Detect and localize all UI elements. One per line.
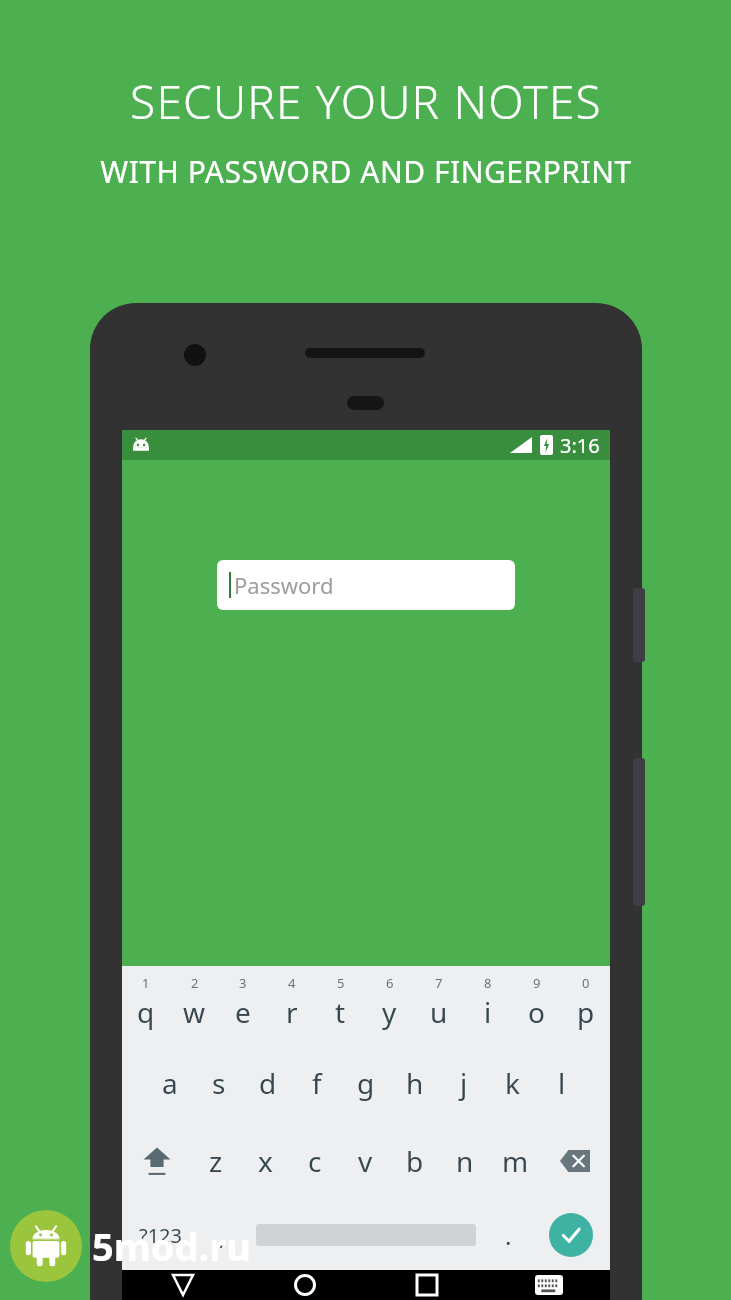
- staticText: s: [212, 1064, 226, 1102]
- staticText: c: [308, 1142, 322, 1180]
- button[interactable]: 6: [365, 966, 414, 1044]
- staticText: j: [460, 1064, 468, 1102]
- button[interactable]: Shift: [122, 1122, 191, 1200]
- staticText: a: [162, 1064, 178, 1102]
- staticText: 9: [533, 974, 541, 992]
- button[interactable]: a: [146, 1044, 194, 1122]
- button[interactable]: k: [488, 1044, 537, 1122]
- staticText: q: [137, 993, 155, 1031]
- button[interactable]: g: [341, 1044, 390, 1122]
- button[interactable]: Password: [217, 560, 515, 610]
- button[interactable]: 0: [561, 966, 610, 1044]
- staticText: 8: [484, 974, 492, 992]
- button[interactable]: b: [390, 1122, 440, 1200]
- staticText: i: [484, 993, 492, 1031]
- staticText: b: [406, 1142, 424, 1180]
- button[interactable]: Done: [532, 1200, 610, 1270]
- staticText: 5mod.ru: [92, 1220, 251, 1272]
- button[interactable]: z: [191, 1122, 240, 1200]
- staticText: n: [456, 1142, 474, 1180]
- staticText: 3: [239, 974, 247, 992]
- staticText: v: [358, 1142, 373, 1180]
- staticText: m: [502, 1142, 529, 1180]
- staticText: SECURE YOUR NOTES: [130, 70, 602, 133]
- staticText: WITH PASSWORD AND FINGERPRINT: [100, 151, 632, 192]
- staticText: o: [528, 993, 545, 1031]
- button[interactable]: 4: [267, 966, 316, 1044]
- staticText: 3:16: [560, 432, 600, 459]
- button[interactable]: v: [340, 1122, 390, 1200]
- button[interactable]: Home: [244, 1270, 366, 1300]
- button[interactable]: h: [390, 1044, 439, 1122]
- staticText: ,: [219, 1219, 226, 1252]
- staticText: t: [335, 993, 346, 1031]
- button[interactable]: 8: [463, 966, 512, 1044]
- staticText: z: [209, 1142, 223, 1180]
- staticText: 1: [142, 974, 150, 992]
- button[interactable]: l: [537, 1044, 586, 1122]
- button[interactable]: m: [490, 1122, 540, 1200]
- button[interactable]: Back: [122, 1270, 244, 1300]
- staticText: u: [430, 993, 448, 1031]
- button[interactable]: ?123: [122, 1200, 199, 1270]
- staticText: y: [382, 993, 397, 1031]
- button[interactable]: Backspace: [540, 1122, 610, 1200]
- staticText: Password: [234, 570, 334, 600]
- button[interactable]: x: [240, 1122, 290, 1200]
- button[interactable]: 9: [512, 966, 561, 1044]
- button[interactable]: ,: [199, 1200, 246, 1270]
- staticText: .: [505, 1219, 512, 1252]
- staticText: 6: [386, 974, 394, 992]
- staticText: p: [577, 993, 595, 1031]
- staticText: k: [505, 1064, 520, 1102]
- button[interactable]: 3: [218, 966, 267, 1044]
- staticText: d: [259, 1064, 277, 1102]
- button[interactable]: 7: [414, 966, 463, 1044]
- staticText: g: [357, 1064, 375, 1102]
- button[interactable]: s: [194, 1044, 243, 1122]
- button[interactable]: Space: [246, 1200, 485, 1270]
- staticText: 4: [288, 974, 296, 992]
- staticText: w: [183, 993, 206, 1031]
- staticText: 7: [435, 974, 443, 992]
- button[interactable]: c: [290, 1122, 340, 1200]
- staticText: h: [406, 1064, 424, 1102]
- staticText: e: [235, 993, 251, 1031]
- button[interactable]: j: [439, 1044, 488, 1122]
- button[interactable]: 1: [122, 966, 170, 1044]
- staticText: ?123: [139, 1222, 182, 1249]
- staticText: 5: [337, 974, 345, 992]
- button[interactable]: 2: [170, 966, 218, 1044]
- button[interactable]: Recents: [366, 1270, 488, 1300]
- staticText: x: [258, 1142, 273, 1180]
- staticText: f: [312, 1064, 322, 1102]
- button[interactable]: 5: [316, 966, 365, 1044]
- button[interactable]: n: [440, 1122, 490, 1200]
- button[interactable]: f: [292, 1044, 341, 1122]
- button[interactable]: Hide keyboard: [488, 1270, 610, 1300]
- button[interactable]: d: [243, 1044, 292, 1122]
- button[interactable]: .: [485, 1200, 532, 1270]
- staticText: 0: [582, 974, 590, 992]
- staticText: l: [558, 1064, 566, 1102]
- staticText: r: [286, 993, 298, 1031]
- staticText: 2: [191, 974, 199, 992]
